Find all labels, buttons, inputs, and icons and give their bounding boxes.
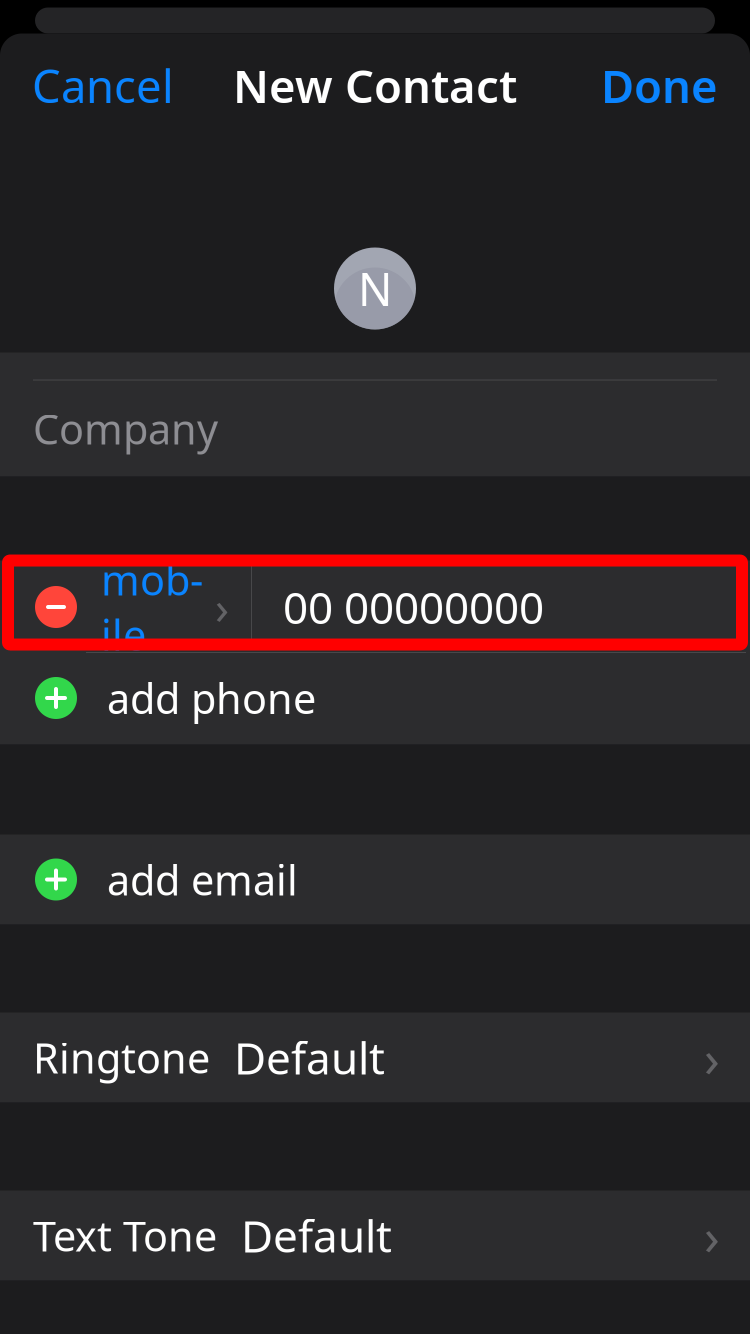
button[interactable]: Ringtone [0, 1012, 750, 1102]
staticText: Default [241, 1206, 392, 1265]
button[interactable]: Add photo [334, 247, 416, 329]
staticText: Done [601, 55, 718, 116]
staticText: mobile [101, 552, 203, 662]
button[interactable]: Cancel [0, 41, 206, 130]
staticText: 00 00000000 [283, 578, 544, 636]
button[interactable]: Company [0, 380, 750, 476]
staticText: Company [33, 401, 218, 456]
button[interactable]: mobile [0, 562, 750, 652]
staticText: Default [234, 1028, 385, 1087]
staticText: › [704, 1024, 720, 1091]
button[interactable]: add email [0, 834, 750, 924]
staticText: add email [107, 852, 298, 907]
staticText: Cancel [32, 55, 174, 116]
staticText: N [358, 258, 392, 319]
staticText: Ringtone [33, 1030, 210, 1085]
staticText: Text Tone [33, 1208, 217, 1263]
button[interactable]: Text Tone [0, 1190, 750, 1280]
button[interactable]: add phone [0, 653, 750, 743]
button[interactable]: Done [569, 41, 750, 130]
staticText: add phone [107, 671, 316, 725]
staticText: New Contact [233, 55, 517, 116]
staticText: › [704, 1202, 720, 1269]
staticText: › [215, 577, 229, 637]
